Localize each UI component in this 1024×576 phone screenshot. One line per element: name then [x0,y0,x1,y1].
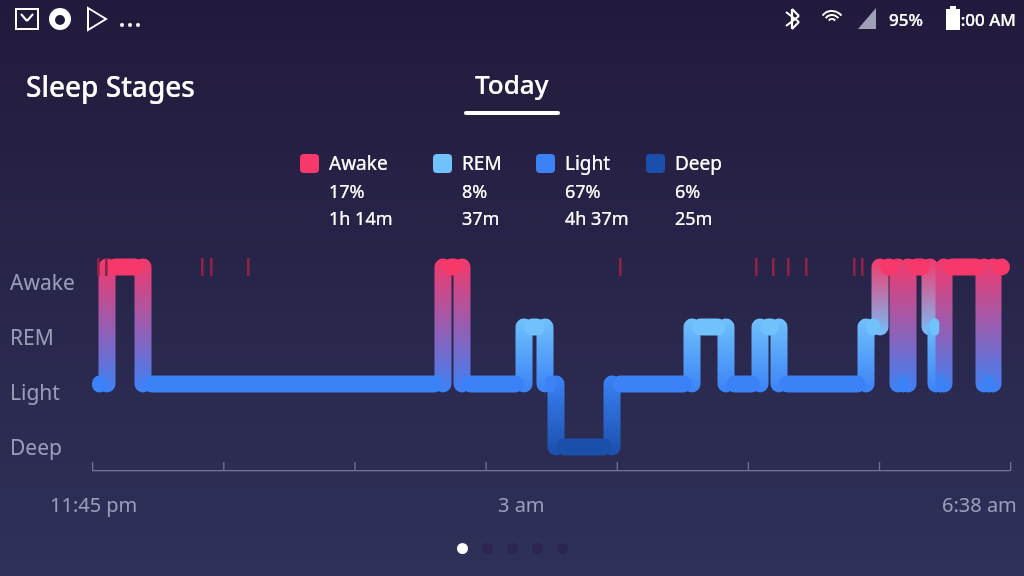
staticText: 8% [462,179,488,204]
staticText: 4h 37m [565,206,629,231]
staticText: 67% [565,179,601,204]
staticText: Light [565,150,611,176]
button[interactable]: Page 4 [532,543,543,554]
staticText: 17% [329,179,365,204]
staticText: REM [462,150,502,176]
staticText: 25m [675,206,713,231]
staticText: 11:45 pm [50,491,138,518]
staticText: REM [10,323,54,352]
button[interactable]: Light [536,150,646,231]
staticText: Today [475,66,549,101]
staticText: Deep [10,433,62,462]
button[interactable]: Page 2 [482,543,493,554]
button[interactable]: REM [433,150,536,231]
staticText: Awake [329,150,388,176]
staticText: 37m [462,206,500,231]
button[interactable]: Sleep Stages [26,67,195,105]
staticText: 1h 14m [329,206,393,231]
staticText: 95% [889,8,923,31]
button[interactable]: Page 3 [507,543,518,554]
staticText: 8:00 AM [951,8,1016,31]
button[interactable]: Page 1 [457,543,468,554]
button[interactable]: Deep [646,150,746,231]
staticText: Deep [675,150,722,176]
staticText: 3 am [498,491,545,518]
button[interactable]: Awake [300,150,433,231]
staticText: 6:38 am [942,491,1017,518]
staticText: 6% [675,179,701,204]
button[interactable]: Today [0,66,1024,115]
staticText: Awake [10,268,75,297]
staticText: Light [10,378,60,407]
button[interactable]: Page 5 [557,543,568,554]
